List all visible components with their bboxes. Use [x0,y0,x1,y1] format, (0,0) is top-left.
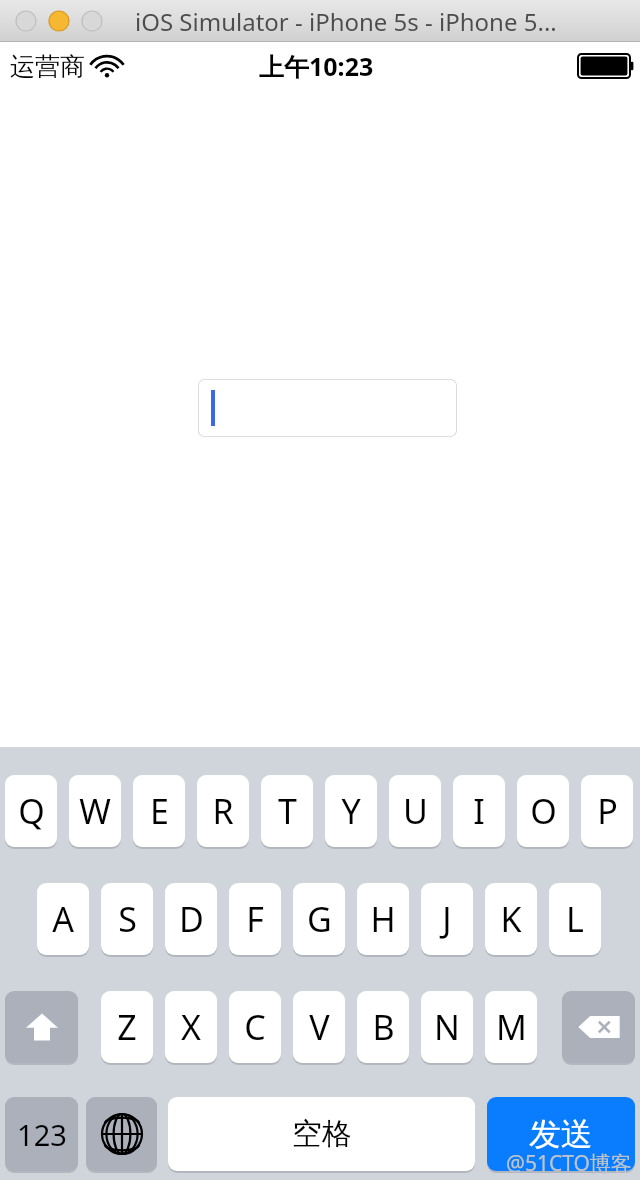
staticText: iOS Simulator - iPhone 5s - iPhone 5... [135,5,557,38]
button[interactable]: Backspace [562,991,635,1064]
staticText: X [181,1004,201,1050]
button[interactable]: M [485,991,537,1064]
button[interactable]: V [293,991,345,1064]
staticText: N [434,1004,460,1050]
staticText: 123 [17,1115,67,1154]
staticText: M [496,1004,527,1050]
button[interactable]: 空格 [168,1097,475,1172]
staticText: B [372,1004,395,1050]
staticText: Y [341,788,361,834]
button[interactable]: Close [15,10,37,32]
button[interactable]: Y [325,775,377,848]
staticText: G [307,896,332,942]
staticText: I [473,788,485,834]
button[interactable]: 123 [5,1097,78,1172]
staticText: H [370,896,396,942]
button[interactable]: O [517,775,569,848]
button[interactable]: L [549,883,601,956]
button[interactable]: I [453,775,505,848]
button[interactable]: G [293,883,345,956]
staticText: U [403,788,428,834]
button[interactable]: H [357,883,409,956]
button[interactable]: C [229,991,281,1064]
staticText: S [118,896,137,942]
button[interactable]: D [165,883,217,956]
staticText: Z [117,1004,137,1050]
staticText: J [442,896,452,942]
staticText: L [566,896,584,942]
button[interactable]: A [37,883,89,956]
staticText: O [530,788,557,834]
staticText: 上午10:23 [259,49,374,83]
button[interactable]: Shift [5,991,78,1064]
button[interactable]: T [261,775,313,848]
button[interactable]: S [101,883,153,956]
staticText: @51CTO博客 [506,1149,632,1178]
staticText: V [309,1004,330,1050]
button[interactable]: 发送 [487,1097,635,1172]
staticText: E [150,788,169,834]
staticText: K [500,896,522,942]
button[interactable]: F [229,883,281,956]
button[interactable] [198,379,457,437]
button[interactable]: K [485,883,537,956]
button[interactable]: Q [5,775,57,848]
staticText: R [212,788,234,834]
staticText: W [79,788,111,834]
button[interactable]: Switch keyboard [86,1097,157,1172]
staticText: P [597,788,618,834]
staticText: F [246,896,264,942]
staticText: D [179,896,204,942]
staticText: 空格 [292,1115,352,1153]
button[interactable]: J [421,883,473,956]
staticText: T [278,788,297,834]
staticText: C [244,1004,266,1050]
staticText: A [52,896,74,942]
button[interactable]: X [165,991,217,1064]
staticText: 发送 [529,1114,593,1154]
button[interactable]: W [69,775,121,848]
button[interactable]: P [581,775,633,848]
button[interactable]: E [133,775,185,848]
staticText: 运营商 [10,51,85,82]
button[interactable]: Minimize [48,10,70,32]
button[interactable]: B [357,991,409,1064]
button[interactable]: Zoom [81,10,103,32]
button[interactable]: R [197,775,249,848]
staticText: Q [18,788,45,834]
button[interactable]: N [421,991,473,1064]
button[interactable]: Z [101,991,153,1064]
button[interactable]: U [389,775,441,848]
